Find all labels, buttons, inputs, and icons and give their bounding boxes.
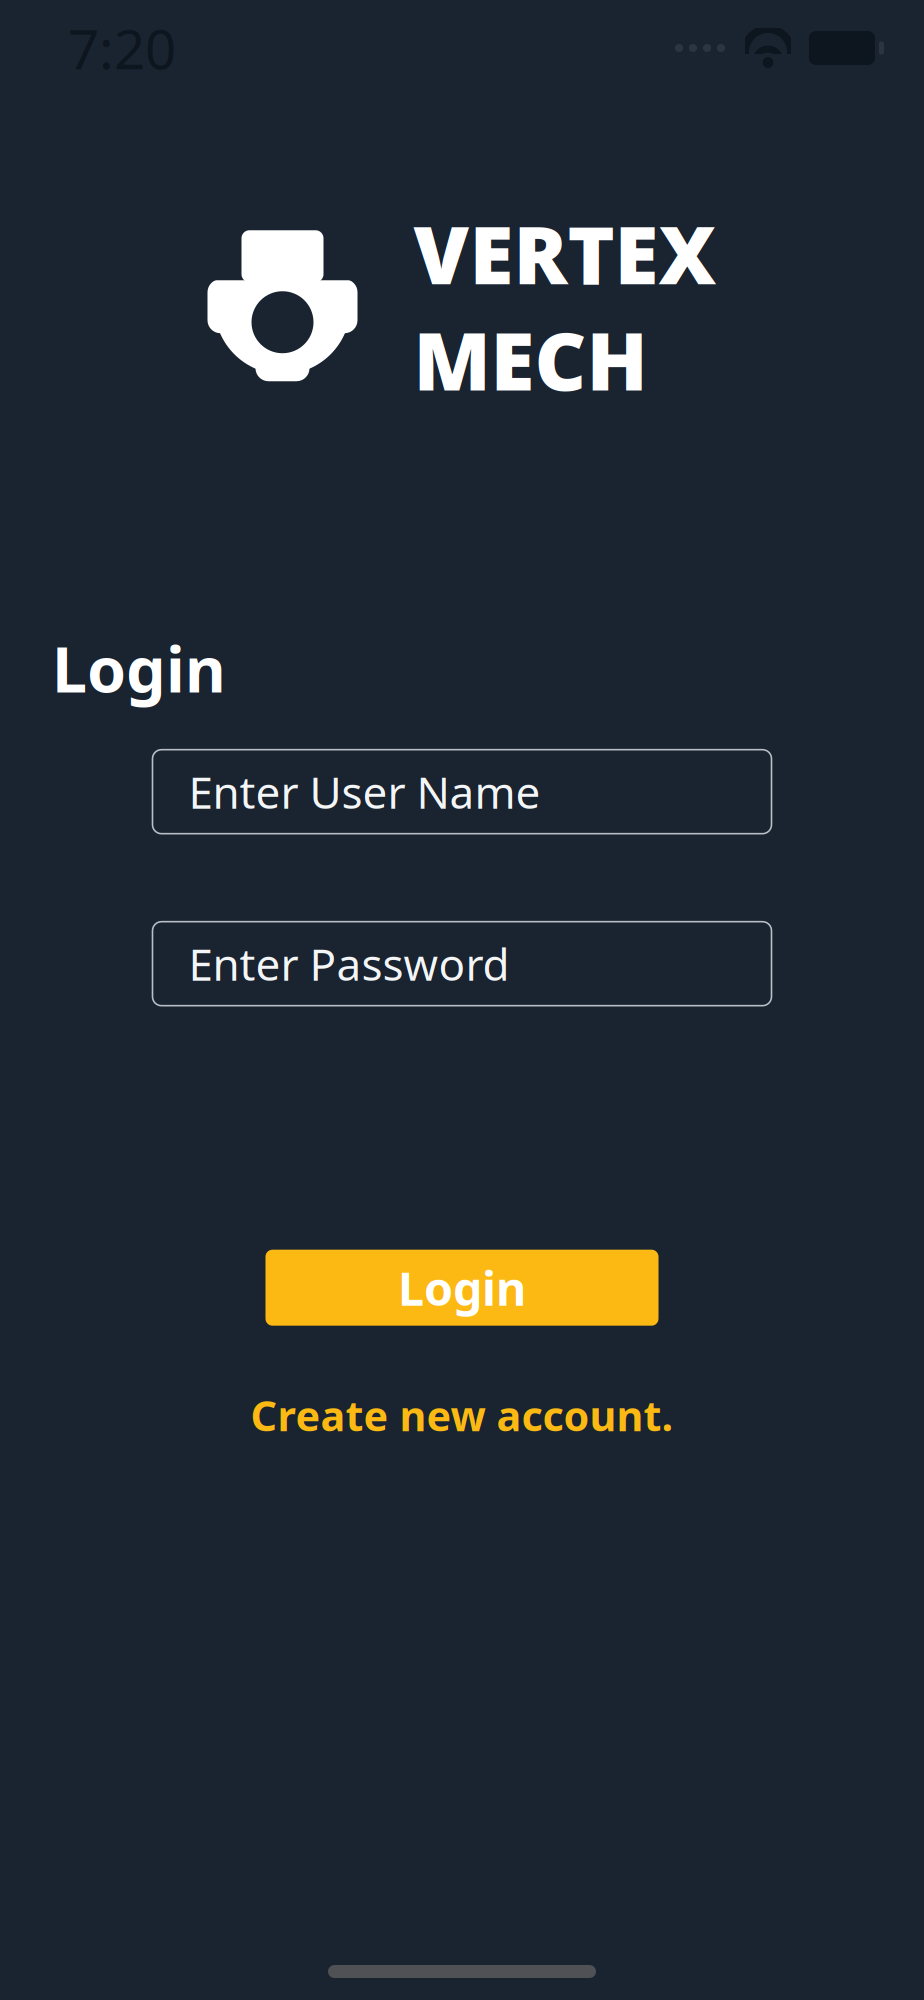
staticText: MECH	[413, 306, 647, 412]
staticText: Enter User Name	[188, 762, 540, 821]
button[interactable]: Login	[265, 1250, 658, 1326]
button[interactable]: Enter User Name	[152, 750, 771, 834]
button[interactable]: Enter Password	[152, 922, 771, 1006]
button[interactable]: Create new account.	[230, 1374, 693, 1457]
staticText: Create new account.	[250, 1388, 673, 1443]
staticText: Login	[398, 1257, 526, 1319]
staticText: VERTEX	[413, 200, 716, 306]
staticText: Enter Password	[188, 934, 509, 993]
staticText: 7:20	[68, 12, 176, 84]
staticText: Login	[52, 626, 226, 710]
